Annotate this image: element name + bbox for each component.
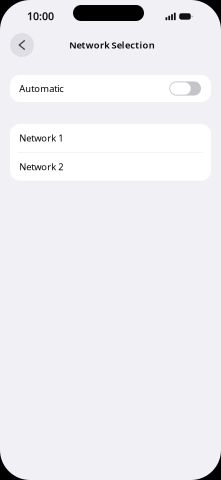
staticText: Network 1	[19, 132, 63, 144]
button[interactable]: Automatic	[10, 75, 211, 102]
staticText: Network 2	[19, 160, 63, 173]
staticText: 10:00	[27, 9, 54, 23]
staticText: Network Selection	[69, 39, 155, 51]
button[interactable]: Network 2	[10, 153, 211, 181]
button[interactable]: Network 1	[10, 124, 211, 152]
button[interactable]: Back	[10, 33, 34, 57]
staticText: Automatic	[19, 82, 63, 95]
